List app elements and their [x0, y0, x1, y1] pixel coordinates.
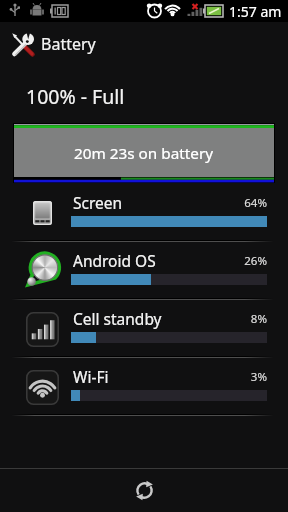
staticText: 3%: [225, 369, 267, 385]
staticText: Screen: [73, 192, 123, 213]
staticText: 1:57 am: [229, 2, 282, 21]
staticText: Wi-Fi: [73, 366, 109, 387]
button[interactable]: Cell standby: [0, 300, 288, 358]
staticText: 8%: [225, 311, 267, 327]
staticText: 20m 23s on battery: [74, 143, 214, 164]
staticText: 100% - Full: [26, 83, 125, 110]
staticText: Cell standby: [73, 308, 162, 329]
button[interactable]: Screen: [0, 184, 288, 242]
staticText: 64%: [225, 195, 267, 211]
staticText: 26%: [225, 253, 267, 269]
staticText: Battery: [41, 33, 96, 55]
staticText: Android OS: [73, 250, 156, 271]
button[interactable]: Battery: [0, 22, 288, 66]
button[interactable]: Refresh: [114, 469, 174, 512]
button[interactable]: Android OS: [0, 242, 288, 300]
button[interactable]: Wi-Fi: [0, 358, 288, 416]
